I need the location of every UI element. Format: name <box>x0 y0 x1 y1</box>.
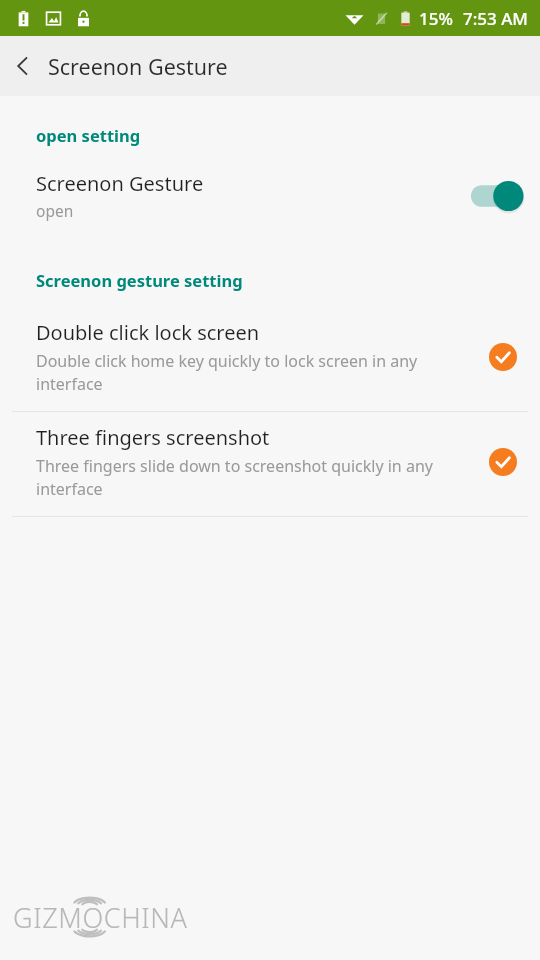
staticText: 15% <box>419 7 453 30</box>
staticText: open <box>36 200 74 221</box>
staticText: Three fingers screenshot <box>36 424 270 451</box>
staticText: Double click home key quickly to lock sc… <box>36 350 470 395</box>
staticText: Double click lock screen <box>36 319 260 346</box>
button[interactable]: Double click lock screen <box>0 307 540 411</box>
staticText: 7:53 AM <box>463 7 528 30</box>
staticText: Three fingers slide down to screenshot q… <box>36 455 470 500</box>
staticText: Screenon Gesture <box>36 170 204 197</box>
button[interactable]: Screenon Gesture <box>0 162 540 231</box>
staticText: Screenon Gesture <box>48 52 228 81</box>
button[interactable]: Back <box>0 43 46 89</box>
staticText: Screenon gesture setting <box>36 269 243 291</box>
staticText: GIZMOCHINA <box>13 899 188 936</box>
button[interactable]: Screenon Gesture toggle <box>470 178 518 214</box>
button[interactable]: Enabled <box>486 445 520 479</box>
button[interactable]: Enabled <box>486 340 520 374</box>
button[interactable]: Three fingers screenshot <box>0 412 540 516</box>
staticText: open setting <box>36 124 141 146</box>
